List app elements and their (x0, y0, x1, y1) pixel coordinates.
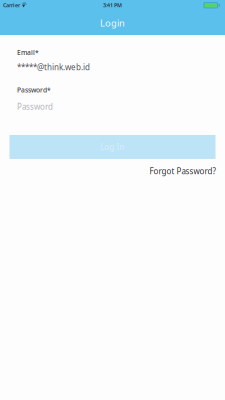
staticText: Forgot Password? (149, 166, 215, 177)
staticText: Log In (100, 142, 124, 152)
staticText: Carrier (3, 2, 20, 9)
staticText: Email* (17, 48, 39, 57)
staticText: *****@think.web.id (17, 62, 90, 72)
staticText: Password (17, 101, 53, 112)
button[interactable]: Forgot Password? (149, 166, 215, 177)
staticText: Login (100, 17, 125, 29)
staticText: 3:41 PM (103, 2, 122, 9)
staticText: Password* (17, 85, 51, 94)
